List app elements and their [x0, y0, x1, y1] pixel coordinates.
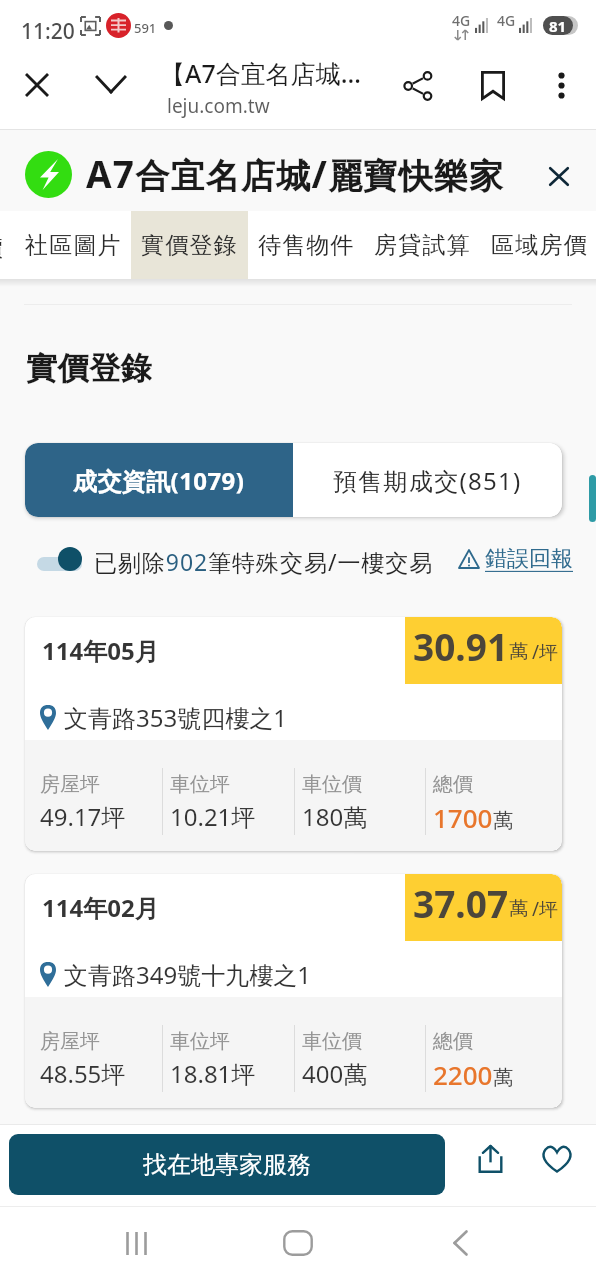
staticText: /坪 — [532, 896, 559, 922]
staticText: 114年05月 — [42, 634, 159, 667]
staticText: 萬 — [509, 640, 528, 664]
staticText: 49.17坪 — [40, 800, 126, 833]
staticText: 總價 — [433, 772, 473, 797]
button[interactable]: 114年05月 — [25, 617, 562, 851]
staticText: 錯誤回報 — [485, 545, 573, 573]
button[interactable]: Bookmark — [470, 62, 516, 108]
button[interactable]: Share — [465, 1134, 515, 1184]
staticText: 11:20 — [21, 17, 75, 46]
button[interactable]: 實價登錄 — [131, 211, 248, 279]
button[interactable]: Share — [395, 63, 441, 109]
staticText: 車位價 — [302, 1029, 362, 1054]
button[interactable]: 社區圖片 — [15, 211, 132, 279]
staticText: 10.21坪 — [170, 800, 256, 833]
staticText: 文青路353號四樓之1 — [64, 701, 287, 734]
staticText: 找在地專家服務 — [143, 1150, 311, 1180]
button[interactable]: 區域房價 — [481, 211, 596, 279]
staticText: 81 — [549, 16, 567, 35]
staticText: 萬 — [493, 808, 513, 833]
button[interactable]: 114年02月 — [25, 874, 562, 1108]
staticText: 房價 — [0, 234, 4, 263]
staticText: 180萬 — [302, 800, 368, 833]
staticText: 實價登錄 — [26, 349, 153, 388]
staticText: 文青路349號十九樓之1 — [64, 958, 311, 991]
staticText: 4G — [497, 11, 516, 30]
staticText: 車位價 — [302, 772, 362, 797]
button[interactable]: Close — [15, 63, 59, 107]
staticText: 總價 — [433, 1029, 473, 1054]
button[interactable]: More options — [538, 62, 584, 108]
staticText: A7合宜名店城/麗寶快樂家 — [86, 148, 505, 198]
staticText: /坪 — [532, 639, 559, 665]
staticText: 114年02月 — [42, 891, 159, 924]
button[interactable]: Favorite — [532, 1134, 582, 1184]
staticText: 4G — [452, 11, 471, 30]
staticText: 591 — [134, 19, 157, 37]
staticText: 區域房價 — [491, 231, 588, 260]
staticText: 房屋坪 — [40, 1029, 100, 1054]
button[interactable] — [37, 543, 82, 571]
button[interactable]: 錯誤回報 — [458, 545, 573, 573]
staticText: 1700 — [433, 800, 493, 835]
staticText: 房貸試算 — [374, 231, 471, 260]
button[interactable]: Close banner — [537, 154, 581, 198]
staticText: 萬 — [509, 897, 528, 921]
staticText: 37.07 — [413, 878, 509, 928]
staticText: 萬 — [493, 1065, 513, 1090]
button[interactable]: Expand — [89, 62, 133, 106]
staticText: 房屋坪 — [40, 772, 100, 797]
button[interactable]: 找在地專家服務 — [9, 1134, 445, 1195]
staticText: 社區圖片 — [25, 231, 122, 260]
staticText: 成交資訊(1079) — [73, 464, 245, 497]
staticText: 【A7合宜名店城… — [160, 56, 361, 90]
button[interactable]: 待售物件 — [248, 211, 365, 279]
staticText: 已剔除902筆特殊交易/一樓交易 — [94, 546, 434, 577]
staticText: 48.55坪 — [40, 1057, 126, 1090]
button[interactable]: 成交資訊(1079) — [25, 443, 293, 517]
staticText: 18.81坪 — [170, 1057, 256, 1090]
staticText: 400萬 — [302, 1057, 368, 1090]
staticText: 車位坪 — [170, 1029, 230, 1054]
staticText: 實價登錄 — [141, 231, 238, 260]
staticText: 待售物件 — [258, 231, 355, 260]
button[interactable]: Home — [272, 1217, 324, 1269]
button[interactable]: 房貸試算 — [364, 211, 481, 279]
staticText: 2200 — [433, 1057, 493, 1092]
button[interactable]: Recents — [110, 1217, 162, 1269]
button[interactable]: Back — [434, 1217, 486, 1269]
staticText: leju.com.tw — [167, 93, 270, 119]
staticText: 30.91 — [413, 621, 509, 671]
button[interactable]: 預售期成交(851) — [293, 443, 562, 517]
staticText: 車位坪 — [170, 772, 230, 797]
staticText: 預售期成交(851) — [333, 464, 522, 497]
